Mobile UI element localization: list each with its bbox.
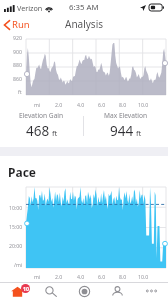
staticText: 4.0: [77, 273, 85, 280]
staticText: 6.0: [98, 273, 106, 280]
staticText: 6:35 AM: [69, 2, 99, 13]
staticText: 900: [13, 48, 22, 55]
staticText: 10.0: [138, 101, 149, 108]
staticText: Run: [12, 18, 30, 31]
button[interactable]: Record: [68, 283, 101, 299]
staticText: 6.0: [98, 101, 106, 108]
button[interactable]: Profile: [101, 283, 134, 299]
staticText: 15:00: [9, 223, 23, 230]
staticText: mi: [34, 101, 41, 108]
staticText: 944: [110, 122, 134, 140]
button[interactable]: Feed: [1, 283, 34, 299]
button[interactable]: Explore: [34, 283, 67, 299]
staticText: 2.0: [55, 273, 63, 280]
staticText: ft: [52, 128, 58, 138]
staticText: 8.0: [119, 101, 127, 108]
staticText: 860: [13, 75, 22, 82]
staticText: mi: [34, 273, 41, 280]
staticText: Pace: [8, 164, 36, 180]
staticText: 10:00: [9, 204, 23, 211]
staticText: ft: [136, 128, 142, 138]
button[interactable]: Run: [0, 16, 36, 33]
button[interactable]: More: [135, 283, 168, 299]
staticText: 10.0: [138, 273, 149, 280]
staticText: Analysis: [65, 17, 104, 31]
staticText: 2.0: [55, 101, 63, 108]
staticText: 10: [23, 285, 29, 292]
staticText: 8.0: [119, 273, 127, 280]
staticText: Verizon: [17, 3, 43, 13]
staticText: ft: [18, 88, 22, 95]
staticText: Max Elevation: [104, 111, 148, 120]
staticText: 20:00: [9, 242, 23, 249]
staticText: Elevation Gain: [19, 111, 64, 120]
staticText: 468: [26, 122, 50, 140]
staticText: 920: [13, 34, 22, 41]
staticText: /mi: [14, 261, 23, 268]
staticText: 4.0: [77, 101, 85, 108]
staticText: 880: [13, 61, 22, 68]
